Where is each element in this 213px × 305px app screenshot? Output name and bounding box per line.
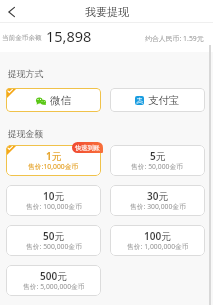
button[interactable]: 10元	[6, 185, 101, 216]
staticText: 当前金币余额	[2, 34, 42, 42]
button[interactable]: 50元	[6, 225, 101, 256]
staticText: 我要提现	[85, 5, 129, 19]
staticText: 售价: 100,000金币	[26, 202, 82, 211]
staticText: 100元	[144, 229, 172, 243]
staticText: 售价: 500,000金币	[26, 242, 82, 251]
button[interactable]: Back	[0, 0, 23, 23]
staticText: 5元	[150, 149, 166, 163]
staticText: 10元	[43, 189, 65, 203]
button[interactable]: 500元	[6, 265, 101, 296]
staticText: 支付宝	[148, 94, 180, 107]
staticText: 约合人民币: 1.59元	[145, 34, 204, 43]
staticText: 50元	[43, 229, 65, 243]
staticText: 快速到账	[75, 144, 100, 152]
staticText: 提现金额	[8, 129, 44, 140]
button[interactable]: 100元	[110, 225, 205, 256]
button[interactable]: 1元	[6, 145, 101, 176]
button[interactable]: 微信	[6, 88, 101, 112]
staticText: 提现方式	[8, 69, 44, 80]
staticText: 30元	[147, 189, 169, 203]
button[interactable]: 支付宝	[110, 88, 205, 112]
staticText: 售价: 50,000金币	[131, 162, 184, 171]
staticText: 售价: 300,000金币	[130, 202, 186, 211]
staticText: 15,898	[46, 26, 92, 46]
staticText: 500元	[40, 269, 68, 283]
staticText: 售价: 1,000,000金币	[127, 242, 189, 251]
staticText: 售价:10,000金币	[28, 162, 79, 171]
button[interactable]: 5元	[110, 145, 205, 176]
staticText: 微信	[50, 94, 71, 107]
staticText: 1元	[46, 149, 62, 163]
button[interactable]: 30元	[110, 185, 205, 216]
staticText: 售价: 5,000,000金币	[23, 282, 85, 291]
